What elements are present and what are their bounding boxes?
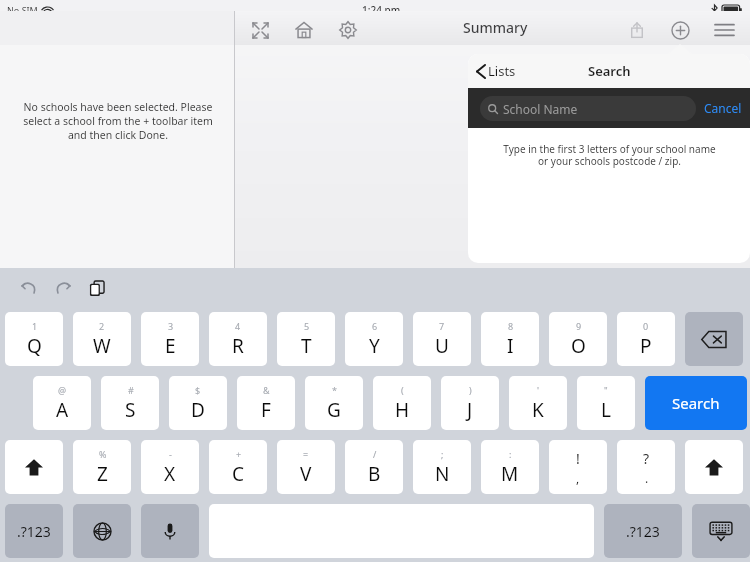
button[interactable]: $ xyxy=(169,376,227,430)
button[interactable]: / xyxy=(345,440,403,494)
button[interactable]: = xyxy=(277,440,335,494)
staticText: % xyxy=(99,448,107,460)
button[interactable]: Shift xyxy=(5,440,63,494)
button[interactable]: Cancel xyxy=(696,100,750,116)
staticText: , xyxy=(576,470,580,486)
staticText: G xyxy=(327,397,341,423)
staticText: # xyxy=(128,384,134,396)
staticText: O xyxy=(571,333,586,359)
button[interactable]: 1 xyxy=(5,312,63,366)
staticText: I xyxy=(507,333,514,359)
button[interactable]: ( xyxy=(373,376,431,430)
button[interactable]: Share xyxy=(623,16,651,44)
button[interactable]: ! xyxy=(549,440,607,494)
staticText: & xyxy=(263,384,270,396)
staticText: U xyxy=(435,333,449,359)
staticText: + xyxy=(236,448,242,460)
staticText: / xyxy=(373,448,377,460)
staticText: N xyxy=(435,461,450,487)
staticText: A xyxy=(56,397,69,423)
button[interactable]: ? xyxy=(617,440,675,494)
staticText: * xyxy=(332,384,337,396)
button[interactable]: ) xyxy=(441,376,499,430)
button[interactable]: 9 xyxy=(549,312,607,366)
button[interactable]: Paste xyxy=(82,273,112,303)
staticText: T xyxy=(301,333,312,359)
staticText: .?123 xyxy=(17,522,51,541)
button[interactable]: 8 xyxy=(481,312,539,366)
staticText: X xyxy=(164,461,176,487)
button[interactable]: Backspace xyxy=(685,312,743,366)
staticText: S xyxy=(125,397,136,423)
button[interactable]: Search xyxy=(645,376,747,430)
button[interactable]: 2 xyxy=(73,312,131,366)
button[interactable]: Home xyxy=(290,16,318,44)
staticText: 9 xyxy=(576,320,582,332)
staticText: C xyxy=(232,461,245,487)
staticText: @ xyxy=(58,384,67,396)
staticText: ! xyxy=(576,449,580,468)
staticText: ; xyxy=(441,448,444,460)
staticText: School Name xyxy=(503,101,578,117)
button[interactable]: 7 xyxy=(413,312,471,366)
staticText: 2 xyxy=(99,320,105,332)
button[interactable]: School Name xyxy=(480,96,696,121)
button[interactable]: 3 xyxy=(141,312,199,366)
staticText: Q xyxy=(27,333,42,359)
button[interactable]: - xyxy=(141,440,199,494)
button[interactable]: 0 xyxy=(617,312,675,366)
staticText: K xyxy=(532,397,544,423)
button[interactable]: + xyxy=(209,440,267,494)
button[interactable]: " xyxy=(577,376,635,430)
staticText: - xyxy=(169,448,172,460)
staticText: J xyxy=(467,397,473,423)
button[interactable]: Lists xyxy=(476,62,516,80)
button[interactable]: Menu xyxy=(710,16,738,44)
staticText: = xyxy=(303,448,309,460)
button[interactable]: 4 xyxy=(209,312,267,366)
staticText: Type in the first 3 letters of your scho… xyxy=(503,142,716,168)
button[interactable]: Change keyboard xyxy=(73,504,131,558)
staticText: 4 xyxy=(235,320,241,332)
button[interactable]: Shift xyxy=(685,440,743,494)
staticText: D xyxy=(191,397,205,423)
staticText: 5 xyxy=(304,320,310,332)
button[interactable]: @ xyxy=(33,376,91,430)
button[interactable]: # xyxy=(101,376,159,430)
button[interactable]: ' xyxy=(509,376,567,430)
button[interactable]: Undo xyxy=(14,273,44,303)
button[interactable]: ; xyxy=(413,440,471,494)
button[interactable]: & xyxy=(237,376,295,430)
staticText: L xyxy=(601,397,611,423)
staticText: ' xyxy=(537,384,540,396)
staticText: Summary xyxy=(463,18,528,37)
button[interactable]: 6 xyxy=(345,312,403,366)
button[interactable]: 5 xyxy=(277,312,335,366)
staticText: No schools have been selected. Please se… xyxy=(18,100,218,142)
staticText: 1 xyxy=(32,320,38,332)
button[interactable]: .?123 xyxy=(604,504,682,558)
button[interactable]: Redo xyxy=(48,273,78,303)
button[interactable]: % xyxy=(73,440,131,494)
staticText: Lists xyxy=(488,62,516,80)
staticText: Search xyxy=(588,62,631,80)
button[interactable]: Dictate xyxy=(141,504,199,558)
button[interactable]: Full screen xyxy=(246,16,274,44)
staticText: 0 xyxy=(643,320,649,332)
button[interactable]: Hide keyboard xyxy=(692,504,750,558)
button[interactable]: : xyxy=(481,440,539,494)
button[interactable]: .?123 xyxy=(5,504,63,558)
button[interactable]: Add xyxy=(666,16,694,44)
staticText: : xyxy=(509,448,512,460)
staticText: .?123 xyxy=(626,522,660,541)
staticText: V xyxy=(300,461,312,487)
staticText: W xyxy=(93,333,111,359)
staticText: ? xyxy=(643,449,650,468)
staticText: . xyxy=(645,470,649,486)
staticText: F xyxy=(261,397,271,423)
button[interactable]: * xyxy=(305,376,363,430)
staticText: Search xyxy=(672,393,720,413)
staticText: 3 xyxy=(168,320,174,332)
button[interactable]: Settings xyxy=(334,16,362,44)
